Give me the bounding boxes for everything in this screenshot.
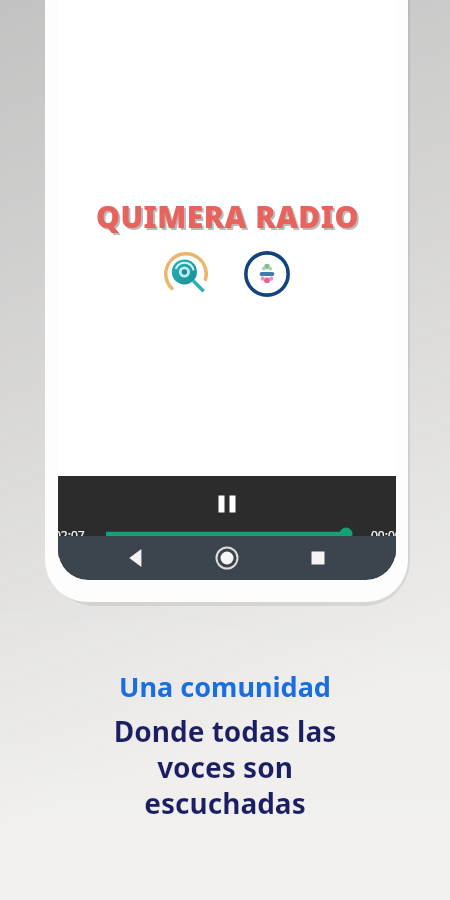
staticText: QUIMERA RADIO (96, 196, 359, 237)
staticText: Donde todas las voces son escuchadas (75, 712, 375, 900)
button[interactable]: Quimera logo (164, 252, 208, 296)
button[interactable]: Seek bar (102, 522, 352, 546)
staticText: QUIMERA RADIO (98, 198, 361, 239)
button[interactable]: Back (116, 538, 156, 578)
button[interactable]: Recent apps (298, 538, 338, 578)
staticText: 02:07 (58, 527, 85, 543)
button[interactable]: Pause (207, 484, 247, 524)
staticText: 00:00 (371, 527, 396, 543)
button[interactable]: Partner logo (244, 251, 290, 297)
button[interactable]: Home (207, 538, 247, 578)
staticText: Una comunidad (119, 668, 331, 705)
